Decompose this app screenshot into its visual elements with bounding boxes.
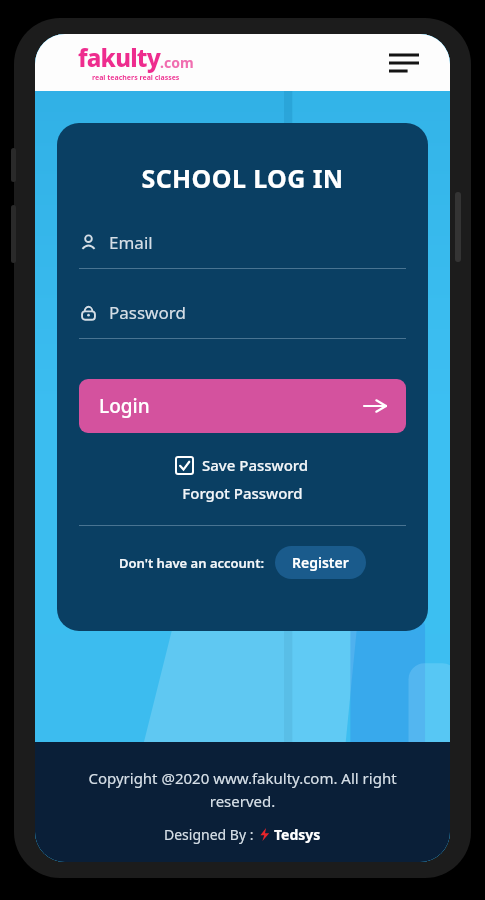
staticText: Don't have an account: bbox=[119, 554, 265, 572]
staticText: .com bbox=[160, 53, 194, 72]
staticText: SCHOOL LOG IN bbox=[79, 161, 406, 195]
button[interactable]: Register bbox=[275, 546, 366, 579]
button[interactable]: Save Password bbox=[176, 455, 309, 475]
button[interactable]: Email bbox=[79, 231, 406, 269]
staticText: Tedsys bbox=[274, 825, 321, 844]
button[interactable]: Login bbox=[79, 379, 406, 433]
button[interactable]: Designed By : bbox=[164, 825, 321, 844]
button[interactable]: Menu bbox=[384, 43, 424, 83]
button[interactable]: Password bbox=[79, 301, 406, 339]
button[interactable]: Forgot Password bbox=[79, 483, 406, 503]
staticText: fakulty bbox=[78, 41, 160, 74]
staticText: Login bbox=[99, 393, 150, 419]
staticText: Register bbox=[292, 553, 349, 572]
staticText: Designed By : bbox=[164, 825, 258, 844]
button[interactable]: fakulty bbox=[78, 41, 194, 84]
staticText: Password bbox=[109, 301, 186, 324]
staticText: Save Password bbox=[202, 455, 309, 475]
staticText: Copyright @2020 www.fakulty.com. All rig… bbox=[63, 768, 422, 811]
staticText: Email bbox=[109, 231, 153, 254]
staticText: real teachers real classes bbox=[92, 73, 180, 83]
